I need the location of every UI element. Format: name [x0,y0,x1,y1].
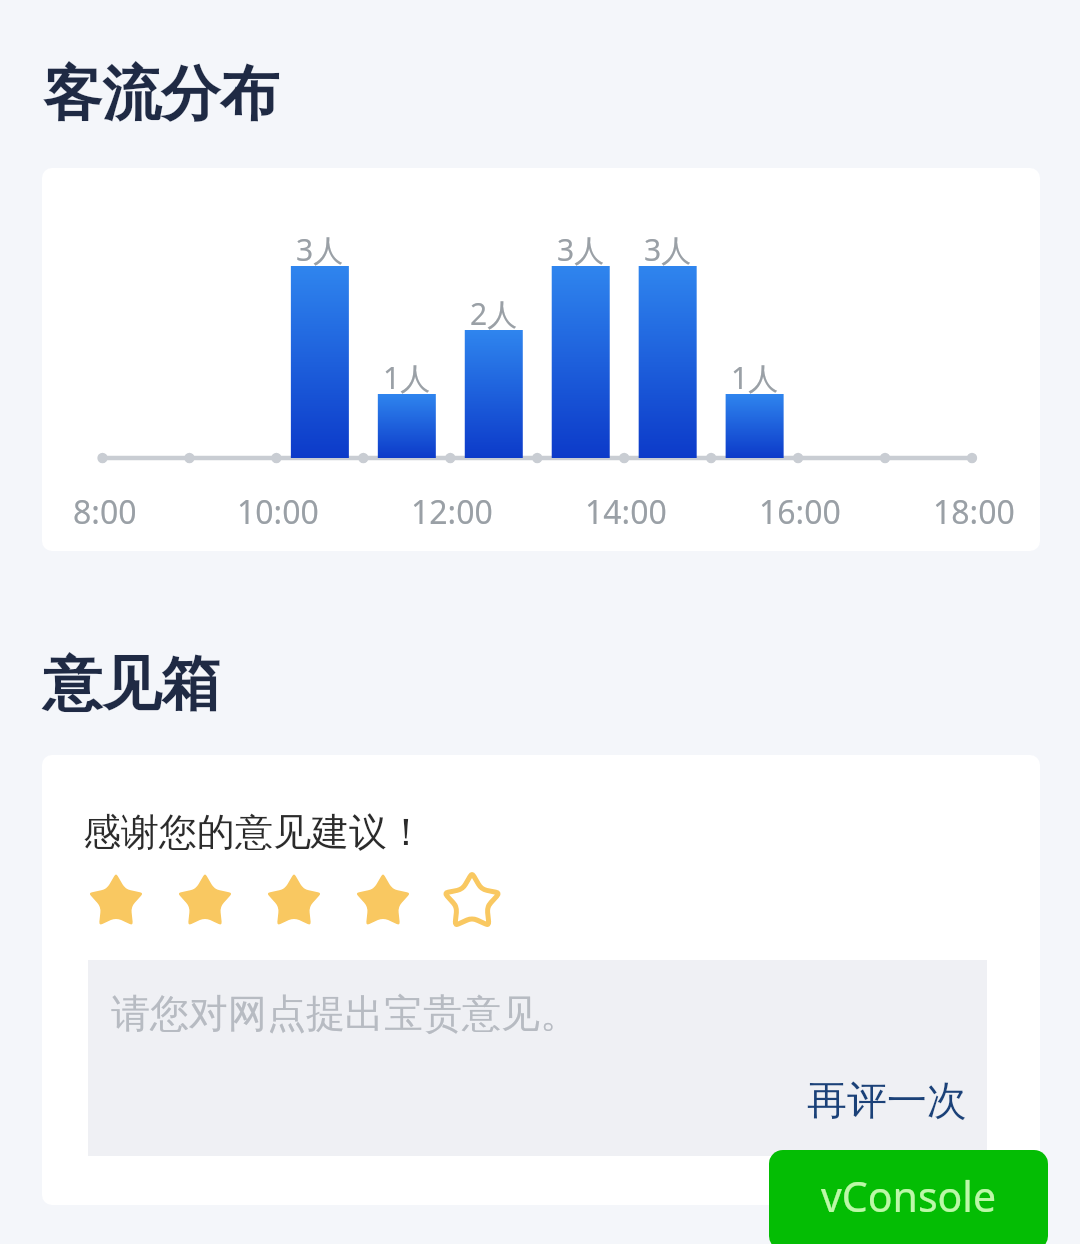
button[interactable]: Rate 2 of 5 stars [160,856,249,946]
staticText: 8:00 [73,490,137,534]
staticText: vConsole [821,1168,997,1224]
staticText: 3人 [644,229,692,270]
staticText: 18:00 [933,490,1015,534]
staticText: 客流分布 [43,57,279,131]
staticText: 2人 [470,293,518,334]
staticText: 请您对网点提出宝贵意见。 [111,989,579,1038]
staticText: 再评一次 [807,1075,967,1125]
staticText: 10:00 [237,490,319,534]
staticText: 12:00 [411,490,493,534]
staticText: 1人 [383,357,431,398]
button[interactable]: Rate 4 of 5 stars [338,856,427,946]
button[interactable]: vConsole [769,1150,1048,1244]
staticText: 16:00 [759,490,841,534]
staticText: 感谢您的意见建议！ [83,808,425,856]
button[interactable]: Rate 5 of 5 stars [427,856,516,946]
staticText: 3人 [557,229,605,270]
button[interactable]: Rate 1 of 5 stars [71,856,160,946]
button[interactable]: 再评一次 [789,1063,985,1137]
button[interactable]: 请您对网点提出宝贵意见。 [88,960,987,1156]
staticText: 3人 [296,229,344,270]
staticText: 1人 [731,357,779,398]
button[interactable]: Rate 3 of 5 stars [249,856,338,946]
staticText: 14:00 [585,490,667,534]
staticText: 意见箱 [43,647,220,721]
